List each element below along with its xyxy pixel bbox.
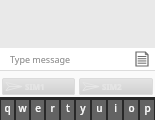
button[interactable]: w [16, 100, 29, 120]
button[interactable]: y [76, 100, 90, 120]
button[interactable]: SIM2 [79, 78, 153, 95]
staticText: t [66, 101, 70, 115]
staticText: w [18, 101, 27, 115]
button[interactable]: t [61, 100, 74, 120]
staticText: i [114, 101, 117, 115]
button[interactable]: SIM1 [2, 78, 75, 95]
staticText: SIM1 [25, 81, 45, 92]
button[interactable]: e [31, 100, 44, 120]
staticText: y [80, 101, 86, 115]
staticText: o [128, 101, 135, 115]
staticText: SIM2 [102, 81, 122, 92]
staticText: u [96, 101, 103, 115]
button[interactable]: o [124, 100, 138, 120]
button[interactable]: r [46, 100, 59, 120]
staticText: Type message [10, 53, 71, 65]
button[interactable]: u [92, 100, 106, 120]
staticText: e [35, 101, 41, 115]
button[interactable]: Message templates [133, 48, 155, 70]
button[interactable]: i [108, 100, 122, 120]
button[interactable]: p [140, 100, 154, 120]
staticText: r [50, 101, 55, 115]
staticText: p [144, 101, 151, 115]
button[interactable]: q [1, 100, 14, 120]
staticText: q [4, 101, 11, 115]
